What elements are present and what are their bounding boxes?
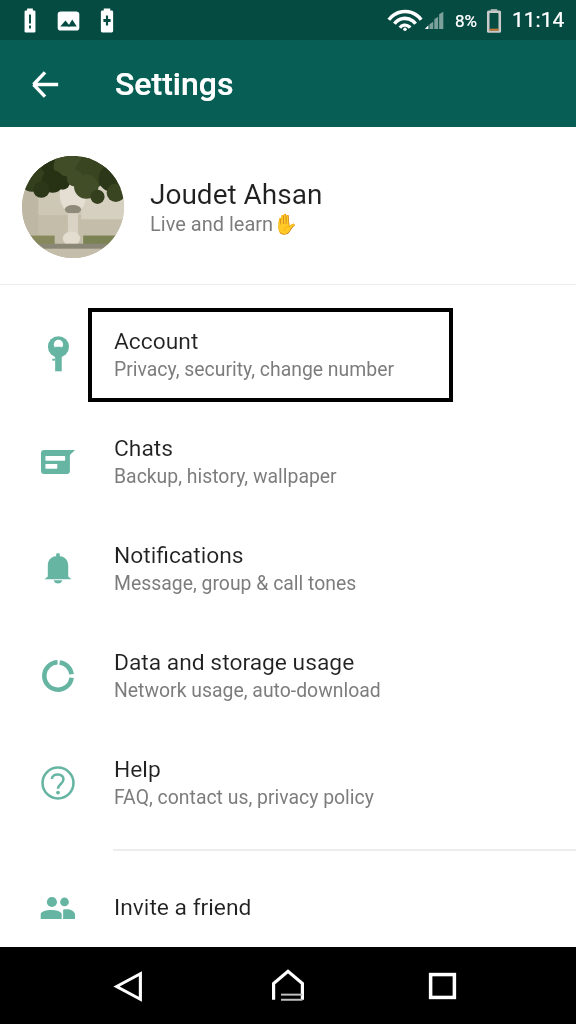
- staticText: 11:14: [512, 8, 565, 33]
- button[interactable]: Home: [256, 952, 320, 1020]
- staticText: Chats: [114, 435, 174, 462]
- staticText: Privacy, security, change number: [114, 358, 395, 381]
- button[interactable]: Data and storage usage: [0, 628, 576, 735]
- button[interactable]: Account: [0, 307, 576, 414]
- staticText: Data and storage usage: [114, 649, 355, 676]
- staticText: Settings: [115, 65, 234, 103]
- staticText: Notifications: [114, 542, 244, 569]
- button[interactable]: Notifications: [0, 521, 576, 628]
- staticText: Network usage, auto-download: [114, 679, 381, 702]
- staticText: Message, group & call tones: [114, 572, 357, 595]
- staticText: Help: [114, 756, 161, 783]
- button[interactable]: Joudet Ahsan: [0, 127, 576, 284]
- staticText: FAQ, contact us, privacy policy: [114, 786, 374, 809]
- staticText: Account: [114, 328, 199, 355]
- staticText: Live and learn✋: [150, 212, 298, 235]
- staticText: Joudet Ahsan: [150, 178, 323, 211]
- button[interactable]: Help: [0, 735, 576, 842]
- button[interactable]: Back: [17, 56, 73, 112]
- staticText: Backup, history, wallpaper: [114, 465, 337, 488]
- staticText: 8%: [455, 11, 478, 31]
- staticText: Invite a friend: [114, 894, 252, 921]
- button[interactable]: Invite a friend: [0, 851, 576, 933]
- button[interactable]: Recent apps: [410, 952, 474, 1020]
- button[interactable]: Back: [96, 952, 160, 1020]
- button[interactable]: Chats: [0, 414, 576, 521]
